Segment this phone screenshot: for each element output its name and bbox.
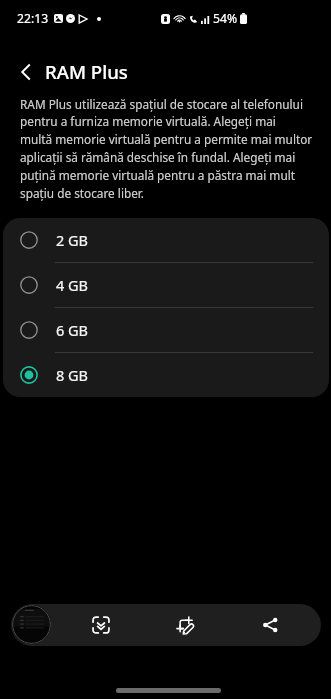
- button[interactable]: 8 GB: [3, 353, 329, 397]
- button[interactable]: 2 GB: [3, 218, 329, 262]
- staticText: RAM Plus: [45, 59, 128, 84]
- button[interactable]: Share: [249, 604, 291, 646]
- staticText: 6 GB: [56, 320, 89, 340]
- staticText: 8 GB: [56, 365, 89, 385]
- button[interactable]: Scroll capture: [80, 604, 122, 646]
- staticText: 2 GB: [56, 230, 89, 250]
- staticText: RAM Plus utilizează spațiul de stocare a…: [20, 96, 330, 201]
- staticText: 4 GB: [56, 275, 89, 295]
- button[interactable]: Back: [10, 56, 41, 87]
- staticText: 54%: [213, 10, 238, 27]
- staticText: 22:13: [17, 10, 49, 27]
- button[interactable]: Edit screenshot: [164, 604, 206, 646]
- button[interactable]: 4 GB: [3, 263, 329, 307]
- button[interactable]: 6 GB: [3, 308, 329, 352]
- button[interactable]: Screenshot preview: [12, 605, 51, 644]
